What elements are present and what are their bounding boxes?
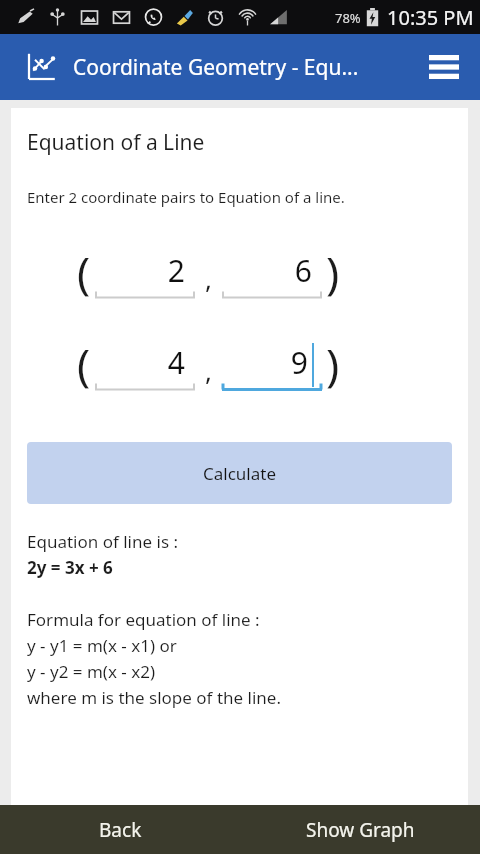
button[interactable]: Calculate <box>27 442 452 504</box>
staticText: , <box>205 261 212 296</box>
staticText: ( <box>77 242 91 302</box>
staticText: Coordinate Geometry - Equ... <box>73 53 359 82</box>
button[interactable]: Back <box>0 805 240 854</box>
staticText: Calculate <box>203 462 276 485</box>
button[interactable]: Show Graph <box>240 805 480 854</box>
staticText: Equation of a Line <box>27 128 205 157</box>
staticText: ) <box>326 334 340 394</box>
button[interactable]: Coordinate input <box>95 245 195 299</box>
staticText: Back <box>99 817 142 843</box>
staticText: ) <box>326 242 340 302</box>
staticText: 4 <box>167 342 185 383</box>
staticText: Enter 2 coordinate pairs to Equation of … <box>27 187 345 207</box>
staticText: 9 <box>290 342 308 383</box>
button[interactable]: Coordinate input <box>95 337 195 391</box>
staticText: y - y2 = m(x - x2) <box>27 660 156 683</box>
button[interactable]: Coordinate input <box>222 337 322 391</box>
staticText: Formula for equation of line : <box>27 608 260 631</box>
staticText: y - y1 = m(x - x1) or <box>27 634 177 657</box>
staticText: 78% <box>335 9 361 27</box>
staticText: , <box>205 353 212 388</box>
staticText: Equation of line is : <box>27 530 179 553</box>
staticText: 2 <box>167 250 185 291</box>
button[interactable]: Coordinate input <box>222 245 322 299</box>
staticText: where m is the slope of the line. <box>27 686 281 709</box>
staticText: Show Graph <box>306 817 415 843</box>
staticText: 6 <box>294 250 312 291</box>
staticText: ( <box>77 334 91 394</box>
staticText: 2y = 3x + 6 <box>27 556 113 579</box>
staticText: 10:35 PM <box>387 4 474 31</box>
button[interactable]: Menu <box>422 45 466 89</box>
